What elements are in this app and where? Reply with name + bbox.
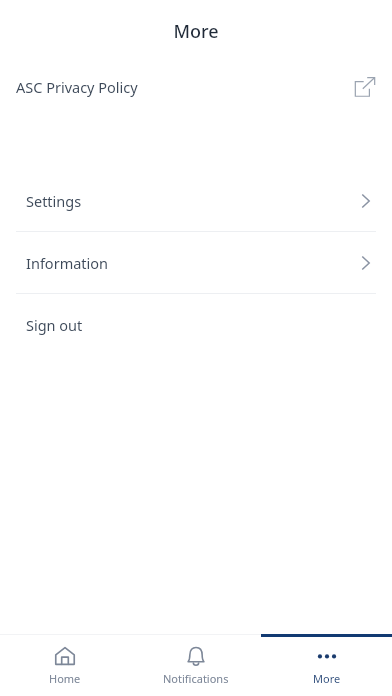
- staticText: More: [313, 671, 341, 686]
- other: Open external link: [354, 76, 376, 98]
- button[interactable]: Information: [0, 232, 392, 293]
- staticText: Home: [49, 671, 81, 686]
- button[interactable]: More: [261, 634, 392, 696]
- staticText: ASC Privacy Policy: [16, 77, 138, 97]
- button[interactable]: Sign out: [0, 294, 392, 355]
- button[interactable]: Home: [0, 634, 130, 696]
- button[interactable]: Settings: [0, 170, 392, 231]
- button[interactable]: Notifications: [130, 634, 261, 696]
- staticText: Notifications: [163, 671, 229, 686]
- staticText: Sign out: [26, 315, 83, 335]
- staticText: Settings: [26, 191, 82, 211]
- staticText: More: [173, 19, 219, 44]
- button[interactable]: ASC Privacy Policy: [0, 62, 392, 112]
- staticText: Information: [26, 253, 109, 273]
